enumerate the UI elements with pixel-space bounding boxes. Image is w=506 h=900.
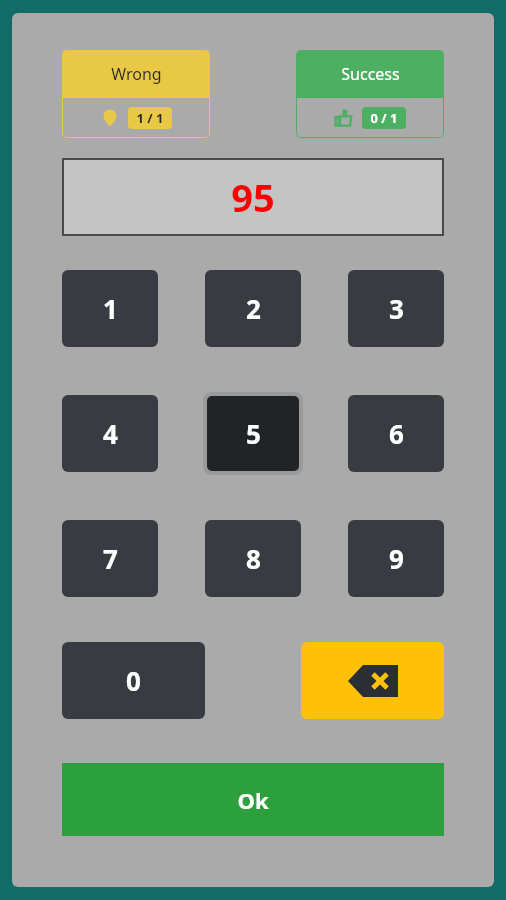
button[interactable]: 2 bbox=[205, 270, 301, 347]
staticText: 8 bbox=[246, 541, 261, 576]
button[interactable]: 8 bbox=[205, 520, 301, 597]
button[interactable]: Wrong bbox=[62, 50, 210, 138]
staticText: 95 bbox=[231, 171, 275, 223]
staticText: 3 bbox=[389, 291, 404, 326]
button[interactable]: 9 bbox=[348, 520, 444, 597]
staticText: Ok bbox=[237, 785, 269, 815]
staticText: 2 bbox=[246, 291, 261, 326]
button[interactable]: 6 bbox=[348, 395, 444, 472]
button[interactable]: 4 bbox=[62, 395, 158, 472]
staticText: Wrong bbox=[111, 63, 162, 85]
staticText: 5 bbox=[246, 416, 261, 451]
staticText: 6 bbox=[389, 416, 404, 451]
staticText: 1 / 1 bbox=[136, 109, 164, 127]
staticText: 0 bbox=[126, 663, 141, 698]
button[interactable]: 0 bbox=[62, 642, 205, 719]
staticText: 0 / 1 bbox=[370, 109, 398, 127]
button[interactable]: Ok bbox=[62, 763, 444, 836]
staticText: 4 bbox=[103, 416, 118, 451]
button[interactable]: 7 bbox=[62, 520, 158, 597]
button[interactable]: 5 bbox=[207, 396, 299, 471]
button[interactable]: 3 bbox=[348, 270, 444, 347]
button[interactable]: Success bbox=[296, 50, 444, 138]
staticText: 7 bbox=[103, 541, 118, 576]
staticText: Success bbox=[341, 63, 400, 85]
staticText: 9 bbox=[389, 541, 404, 576]
staticText: 1 bbox=[103, 291, 118, 326]
button[interactable]: 1 bbox=[62, 270, 158, 347]
button[interactable]: Backspace bbox=[301, 642, 444, 719]
